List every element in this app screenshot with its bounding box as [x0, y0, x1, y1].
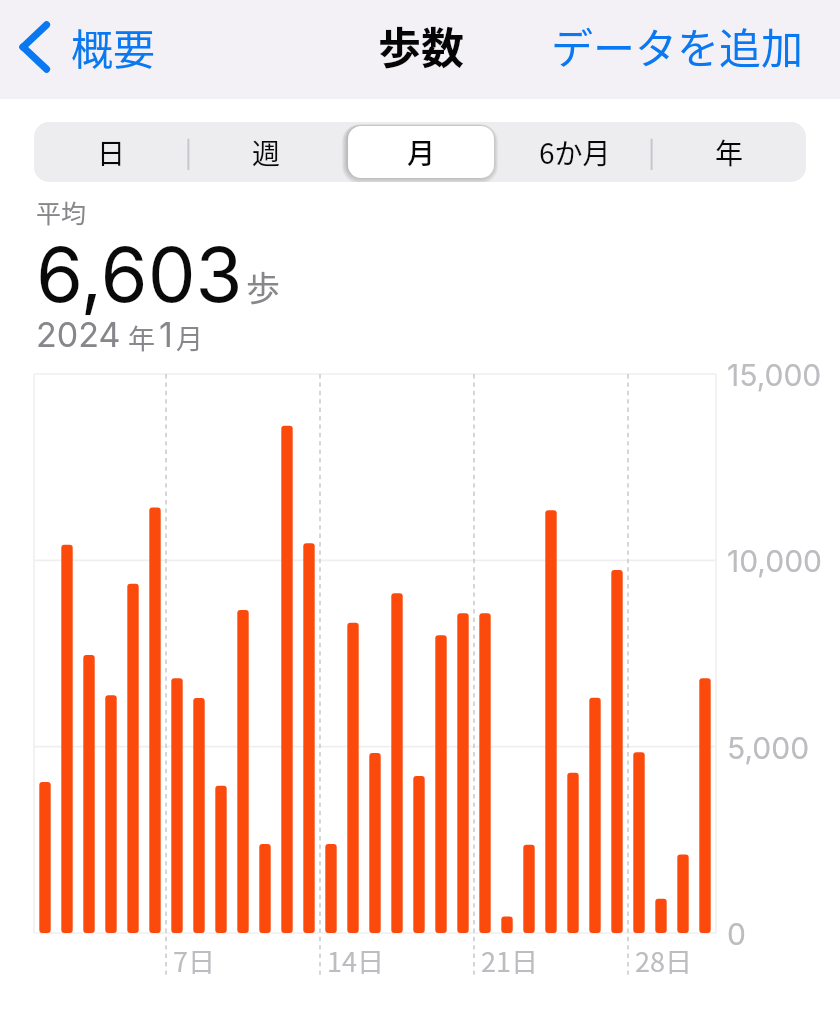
staticText: 年 — [715, 132, 744, 173]
staticText: 平均 — [36, 194, 87, 230]
staticText: 15,000 — [727, 357, 822, 393]
button[interactable]: 日 — [34, 122, 189, 182]
button[interactable]: データを追加 — [537, 4, 818, 87]
button[interactable]: 週 — [189, 122, 344, 182]
staticText: 歩 — [246, 262, 280, 311]
staticText: 2024 — [36, 314, 121, 355]
staticText: データを追加 — [551, 15, 804, 76]
staticText: 6,603 — [36, 228, 243, 320]
staticText: 月 — [407, 132, 436, 173]
button[interactable]: 月 — [344, 122, 498, 182]
staticText: 日 — [97, 132, 126, 173]
staticText: 6か月 — [539, 132, 611, 173]
staticText: 21日 — [481, 941, 538, 980]
button[interactable]: 年 — [652, 122, 806, 182]
staticText: 0 — [727, 916, 746, 952]
other: Back — [18, 17, 52, 77]
staticText: 歩数 — [378, 14, 464, 76]
staticText: 週 — [252, 132, 281, 173]
staticText: 年 — [128, 318, 155, 357]
staticText: 概要 — [71, 16, 156, 77]
staticText: 10,000 — [727, 543, 823, 579]
staticText: 28日 — [635, 941, 692, 980]
staticText: 14日 — [327, 941, 384, 980]
staticText: 月 — [176, 318, 203, 357]
staticText: 7日 — [173, 941, 215, 980]
button[interactable]: Back — [10, 5, 168, 88]
staticText: 1 — [159, 314, 173, 355]
button[interactable]: 6か月 — [498, 122, 652, 182]
staticText: 5,000 — [727, 730, 810, 766]
